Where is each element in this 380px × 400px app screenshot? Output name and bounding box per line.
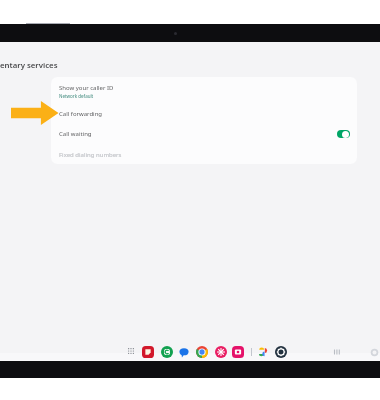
button[interactable]: Photos editor xyxy=(215,346,227,358)
button[interactable]: Handle xyxy=(333,348,341,356)
button[interactable]: Google Photos xyxy=(257,346,269,358)
staticText: entary services xyxy=(0,60,58,71)
button[interactable]: All apps xyxy=(127,347,135,355)
button[interactable]: Phone xyxy=(161,346,173,358)
button[interactable]: Call waiting xyxy=(51,124,357,144)
button[interactable]: Account xyxy=(370,348,379,357)
button[interactable]: Settings xyxy=(275,346,287,358)
staticText: Network default xyxy=(59,93,94,99)
button[interactable]: Chrome xyxy=(196,346,208,358)
button[interactable]: Keep notes xyxy=(142,346,154,358)
staticText: Call waiting xyxy=(59,130,92,138)
button[interactable]: Camera xyxy=(232,346,244,358)
button[interactable]: Messages xyxy=(178,346,190,358)
staticText: Call forwarding xyxy=(59,110,103,118)
button[interactable]: Show your caller ID xyxy=(51,77,357,106)
staticText: Fixed dialing numbers xyxy=(59,151,122,159)
staticText: Show your caller ID xyxy=(59,84,114,92)
button[interactable]: Call forwarding xyxy=(51,104,357,124)
